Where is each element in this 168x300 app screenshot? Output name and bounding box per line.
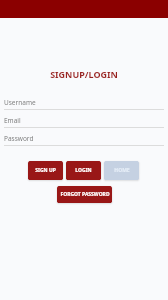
staticText: FORGOT PASSWORD (60, 191, 110, 198)
button[interactable]: Password (4, 134, 164, 146)
button[interactable]: HOME (104, 161, 139, 180)
staticText: HOME (114, 167, 130, 174)
button[interactable]: FORGOT PASSWORD (57, 186, 112, 203)
button[interactable]: Email (4, 116, 164, 128)
button[interactable]: SIGN UP (28, 161, 63, 180)
staticText: Password (4, 134, 34, 143)
staticText: LOGIN (75, 167, 92, 174)
button[interactable]: LOGIN (66, 161, 101, 180)
staticText: SIGNUP/LOGIN (0, 68, 168, 80)
staticText: SIGN UP (35, 167, 56, 174)
staticText: Username (4, 98, 36, 107)
button[interactable]: Username (4, 98, 164, 110)
staticText: Email (4, 116, 21, 125)
